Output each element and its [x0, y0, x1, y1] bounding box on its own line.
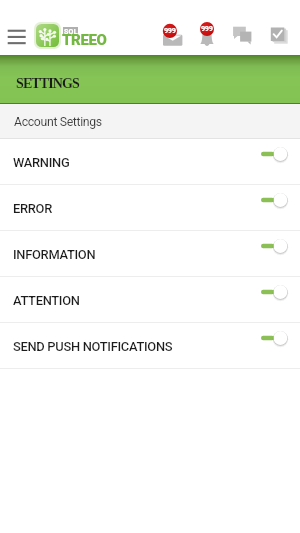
staticText: TREEO [62, 31, 107, 49]
staticText: SQL [64, 28, 78, 36]
staticText: SEND PUSH NOTIFICATIONS [13, 339, 173, 354]
staticText: ERROR [13, 201, 53, 216]
button[interactable]: Menu [4, 24, 29, 48]
button[interactable]: Notifications [194, 18, 220, 44]
button[interactable]: WARNING [0, 139, 300, 185]
staticText: Account Settings [14, 115, 102, 129]
staticText: SETTINGS [16, 76, 79, 92]
staticText: ATTENTION [13, 293, 80, 308]
staticText: 999 [164, 26, 176, 35]
staticText: INFORMATION [13, 247, 96, 262]
staticText: 999 [201, 24, 213, 33]
button[interactable]: INFORMATION [0, 231, 300, 277]
button[interactable]: Tasks [267, 23, 289, 45]
button[interactable]: SEND PUSH NOTIFICATIONS [0, 323, 300, 369]
button[interactable]: ATTENTION [0, 277, 300, 323]
staticText: WARNING [13, 155, 70, 170]
button[interactable]: Chat [231, 22, 254, 45]
button[interactable]: Messages [158, 19, 184, 45]
button[interactable]: ERROR [0, 185, 300, 231]
